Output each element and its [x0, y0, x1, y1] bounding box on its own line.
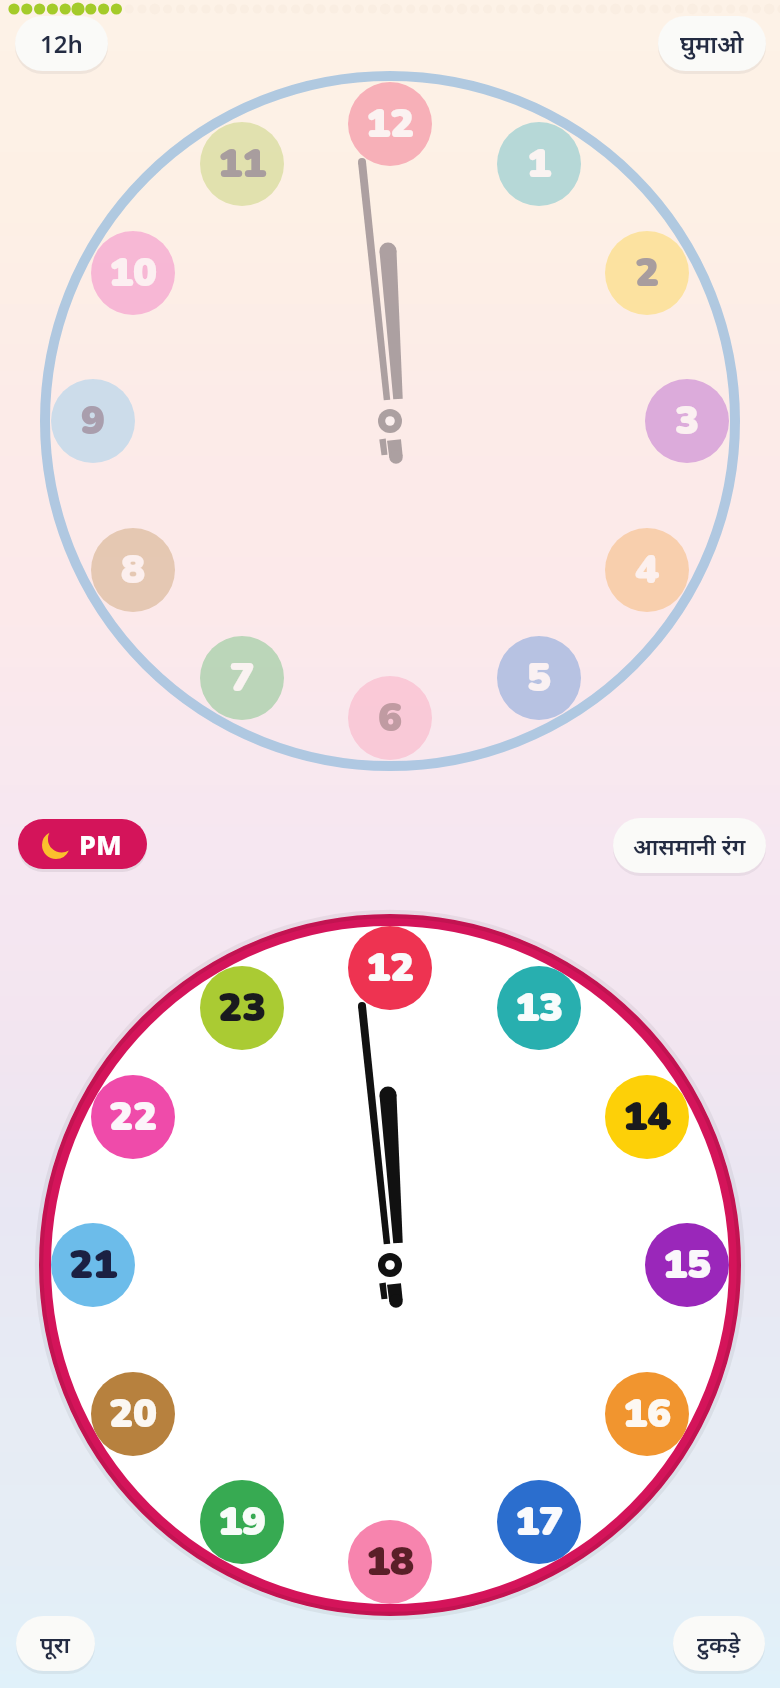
button[interactable]: 15 [645, 1223, 729, 1307]
staticText: 7 [230, 651, 254, 706]
button[interactable]: 12 [348, 926, 432, 1010]
staticText: 13 [515, 981, 563, 1036]
staticText: आसमानी रंग [633, 830, 746, 861]
staticText: 3 [675, 394, 699, 449]
button[interactable]: 14 [605, 1075, 689, 1159]
button[interactable]: 4 [605, 528, 689, 612]
button[interactable]: 20 [91, 1372, 175, 1456]
staticText: 1 [527, 137, 551, 192]
staticText: 12 [366, 941, 414, 996]
staticText: 12h [40, 27, 83, 60]
button[interactable]: आसमानी रंग [613, 818, 766, 873]
staticText: घुमाओ [680, 27, 744, 60]
button[interactable]: 8 [91, 528, 175, 612]
button[interactable]: 24 hour clock face [33, 908, 747, 1622]
staticText: PM [79, 826, 122, 863]
staticText: 8 [121, 543, 145, 598]
staticText: 6 [378, 691, 402, 746]
staticText: टुकड़े [697, 1628, 741, 1659]
staticText: पूरा [40, 1628, 71, 1659]
button[interactable]: 18 [348, 1520, 432, 1604]
staticText: 5 [527, 651, 551, 706]
staticText: 9 [81, 394, 105, 449]
button[interactable]: 6 [348, 676, 432, 760]
button[interactable]: 12 [348, 82, 432, 166]
staticText: 10 [109, 246, 157, 301]
button[interactable]: 5 [497, 636, 581, 720]
button[interactable]: 12 hour clock face [35, 66, 745, 776]
button[interactable]: 10 [91, 231, 175, 315]
staticText: 20 [109, 1387, 157, 1442]
button[interactable]: 13 [497, 966, 581, 1050]
button[interactable]: पूरा [16, 1616, 95, 1671]
staticText: 17 [515, 1495, 563, 1550]
button[interactable]: 1 [497, 122, 581, 206]
button[interactable]: 19 [200, 1480, 284, 1564]
staticText: 12 [366, 97, 414, 152]
button[interactable]: 7 [200, 636, 284, 720]
button[interactable]: 16 [605, 1372, 689, 1456]
staticText: 23 [218, 981, 266, 1036]
button[interactable]: 23 [200, 966, 284, 1050]
button[interactable]: 21 [51, 1223, 135, 1307]
button[interactable]: 12h [15, 16, 108, 71]
button[interactable]: टुकड़े [673, 1616, 765, 1671]
staticText: 11 [218, 137, 266, 192]
button[interactable]: घुमाओ [658, 16, 766, 71]
staticText: 21 [69, 1238, 117, 1293]
staticText: 19 [218, 1495, 266, 1550]
staticText: 4 [635, 543, 659, 598]
button[interactable]: PM, switch to AM [18, 819, 147, 869]
button[interactable]: 17 [497, 1480, 581, 1564]
staticText: 16 [623, 1387, 671, 1442]
button[interactable]: 9 [51, 379, 135, 463]
button[interactable]: 3 [645, 379, 729, 463]
button[interactable]: 11 [200, 122, 284, 206]
button[interactable]: 22 [91, 1075, 175, 1159]
staticText: 14 [623, 1090, 671, 1145]
button[interactable]: 2 [605, 231, 689, 315]
staticText: 18 [366, 1535, 414, 1590]
staticText: 22 [109, 1090, 157, 1145]
staticText: 15 [663, 1238, 711, 1293]
staticText: 2 [635, 246, 659, 301]
